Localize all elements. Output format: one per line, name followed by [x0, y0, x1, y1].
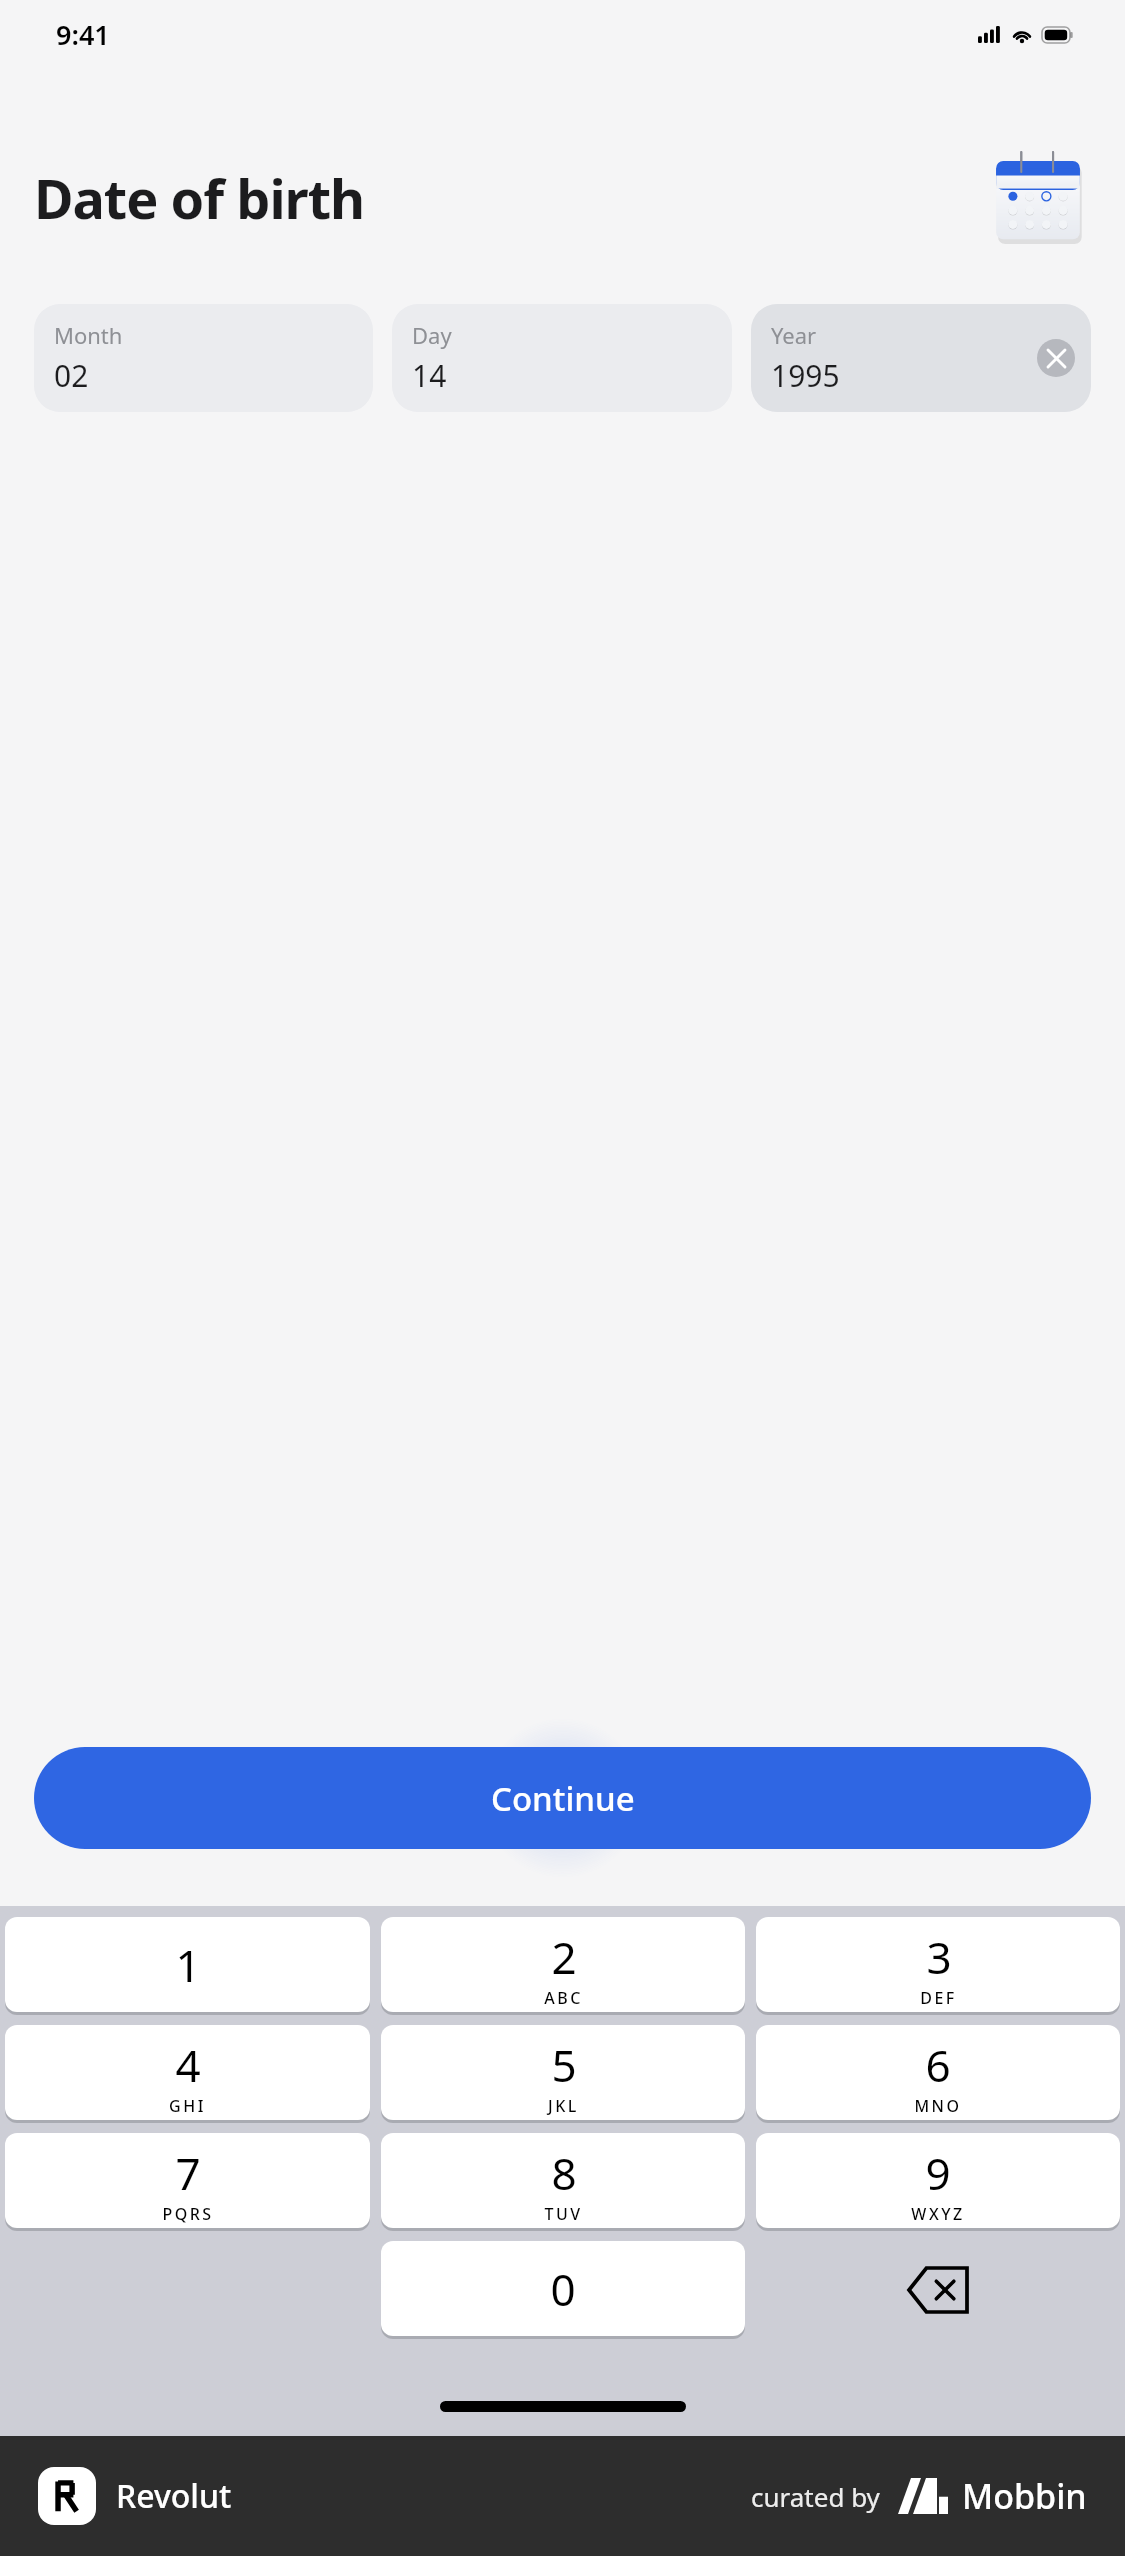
button[interactable]: Continue [34, 1747, 1091, 1849]
staticText: GHI [169, 2095, 206, 2117]
staticText: 8 [551, 2143, 577, 2203]
button[interactable]: Year [751, 304, 1091, 412]
other: Calendar [991, 150, 1085, 246]
button[interactable]: 5 [381, 2025, 745, 2123]
staticText: PQRS [162, 2203, 214, 2225]
staticText: ABC [544, 1987, 583, 2009]
button[interactable]: 6 [756, 2025, 1120, 2123]
staticText: MNO [914, 2095, 962, 2117]
staticText: 2 [551, 1927, 577, 1987]
staticText: 9 [925, 2143, 951, 2203]
button[interactable]: Delete [756, 2241, 1120, 2339]
button[interactable]: 7 [5, 2133, 370, 2231]
staticText: Mobbin [962, 2473, 1087, 2519]
staticText: 0 [550, 2259, 576, 2319]
staticText: 4 [175, 2035, 201, 2095]
button[interactable]: 2 [381, 1917, 745, 2015]
staticText: Month [54, 320, 123, 350]
staticText: DEF [920, 1987, 957, 2009]
staticText: 9:41 [56, 16, 110, 53]
button[interactable]: 0 [381, 2241, 745, 2339]
button[interactable]: 8 [381, 2133, 745, 2231]
button[interactable]: Day [392, 304, 732, 412]
staticText: WXYZ [911, 2203, 965, 2225]
staticText: Day [412, 320, 452, 350]
staticText: 02 [54, 355, 89, 396]
staticText: curated by [751, 2479, 880, 2514]
staticText: 1 [175, 1935, 201, 1995]
staticText: Year [771, 320, 817, 350]
staticText: 3 [926, 1927, 952, 1987]
staticText: 14 [412, 355, 447, 396]
staticText: Revolut [116, 2474, 232, 2518]
button[interactable]: 4 [5, 2025, 370, 2123]
staticText: TUV [544, 2203, 583, 2225]
button[interactable]: 1 [5, 1917, 370, 2015]
staticText: 6 [925, 2035, 951, 2095]
button[interactable]: Clear year [1037, 339, 1075, 377]
staticText: 7 [175, 2143, 201, 2203]
staticText: Continue [491, 1776, 635, 1821]
button[interactable]: 9 [756, 2133, 1120, 2231]
button[interactable]: Month [34, 304, 373, 412]
staticText: 1995 [771, 355, 840, 396]
staticText: 5 [551, 2035, 577, 2095]
staticText: JKL [548, 2095, 579, 2117]
staticText: Date of birth [34, 161, 365, 235]
button[interactable]: 3 [756, 1917, 1120, 2015]
